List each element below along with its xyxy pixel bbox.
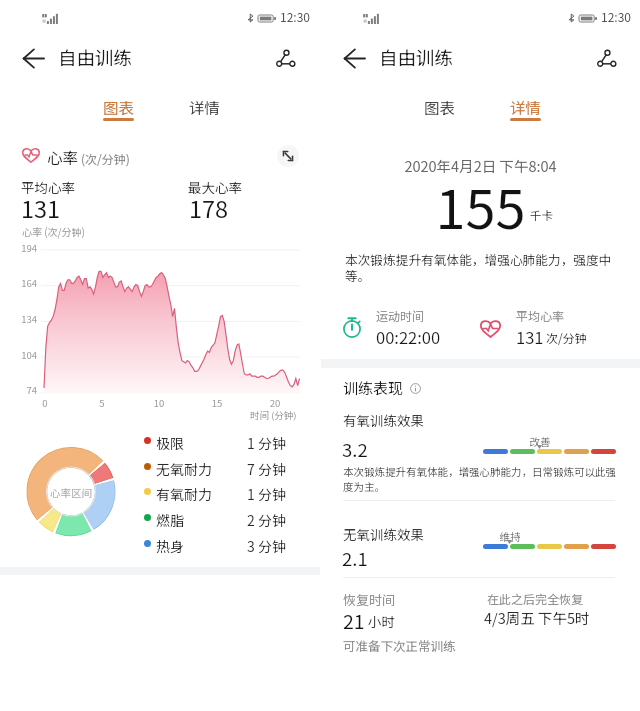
staticText: 1 分钟 — [247, 484, 286, 504]
staticText: 155 — [397, 166, 564, 244]
staticText: 无氧耐力 — [156, 459, 212, 479]
button[interactable]: 有氧耐力 — [138, 480, 284, 506]
button[interactable]: 极限 — [138, 429, 284, 455]
button[interactable]: Back — [19, 45, 47, 71]
staticText: 千卡 — [530, 207, 553, 224]
button[interactable]: 详情 — [498, 92, 553, 126]
staticText: 3.2 — [342, 436, 368, 463]
staticText: 恢复时间 — [343, 590, 396, 609]
staticText: 有氧耐力 — [156, 484, 212, 504]
staticText: 15 — [209, 396, 225, 410]
staticText: 自由训练 — [58, 44, 133, 71]
staticText: 本次锻炼提升有氧体能，增强心肺能力，日常锻炼可以此强度为主。 — [343, 464, 621, 494]
button[interactable]: 无氧耐力 — [138, 455, 284, 481]
staticText: 5 — [94, 396, 110, 410]
button[interactable]: 图表 — [412, 92, 467, 126]
staticText: 心率区间 — [45, 485, 97, 500]
staticText: 在此之后完全恢复 — [487, 590, 584, 607]
button[interactable]: Expand chart — [277, 145, 299, 167]
staticText: 10 — [151, 396, 167, 410]
button[interactable]: 图表 — [91, 92, 146, 126]
staticText: 0 — [37, 396, 53, 410]
staticText: 维持 — [499, 529, 521, 544]
staticText: 改善 — [529, 434, 551, 449]
staticText: 平均心率 — [21, 177, 75, 197]
staticText: 运动时间 — [376, 307, 425, 324]
staticText: 最大心率 — [188, 177, 242, 197]
button[interactable]: Share — [592, 44, 620, 72]
staticText: 详情 — [189, 96, 221, 118]
button[interactable]: Back — [340, 45, 368, 71]
staticText: 12:30 — [601, 8, 631, 25]
staticText: 热身 — [156, 536, 184, 556]
staticText: 178 — [189, 191, 229, 225]
staticText: 小时 — [368, 611, 395, 631]
staticText: 131 — [21, 191, 61, 225]
staticText: 时间 (分钟) — [250, 408, 297, 422]
staticText: 00:22:00 — [376, 325, 441, 349]
staticText: 详情 — [510, 96, 542, 118]
staticText: 无氧训练效果 — [343, 524, 424, 544]
staticText: 平均心率 — [516, 307, 565, 324]
staticText: 12:30 — [280, 8, 310, 25]
staticText: 2 分钟 — [247, 510, 286, 530]
staticText: 图表 — [424, 96, 456, 118]
button[interactable]: 热身 — [138, 532, 284, 558]
button[interactable]: 燃脂 — [138, 506, 284, 532]
staticText: 本次锻炼提升有氧体能，增强心肺能力，强度中等。 — [345, 250, 615, 285]
button[interactable] — [483, 449, 616, 454]
staticText: 21 — [343, 606, 365, 634]
staticText: 20 — [267, 396, 283, 410]
staticText: 3 分钟 — [247, 536, 286, 556]
staticText: 燃脂 — [156, 510, 184, 530]
staticText: 194 — [19, 241, 37, 255]
staticText: 次/分钟 — [546, 329, 587, 346]
staticText: 图表 — [103, 96, 135, 118]
staticText: 2.1 — [342, 545, 368, 572]
staticText: 134 — [19, 312, 37, 326]
staticText: 104 — [19, 348, 37, 362]
staticText: 2020年4月2日 下午8:04 — [321, 155, 640, 176]
staticText: 训练表现 — [343, 377, 404, 399]
staticText: 164 — [19, 276, 37, 290]
staticText: 自由训练 — [379, 44, 454, 71]
staticText: (次/分钟) — [81, 150, 130, 167]
staticText: 4/3周五 下午5时 — [484, 607, 590, 628]
staticText: 心率 — [47, 146, 79, 168]
staticText: 1 分钟 — [247, 433, 286, 453]
staticText: 有氧训练效果 — [343, 410, 424, 430]
staticText: 74 — [19, 383, 37, 397]
staticText: 心率 (次/分钟) — [22, 224, 85, 238]
staticText: 7 分钟 — [247, 459, 286, 479]
staticText: 极限 — [156, 433, 184, 453]
button[interactable]: Share — [271, 44, 299, 72]
button[interactable]: 详情 — [177, 92, 232, 126]
staticText: 可准备下次正常训练 — [343, 636, 456, 654]
button[interactable] — [483, 544, 616, 549]
staticText: 131 — [516, 325, 544, 349]
